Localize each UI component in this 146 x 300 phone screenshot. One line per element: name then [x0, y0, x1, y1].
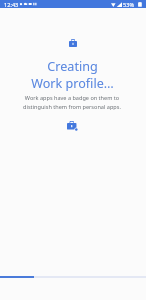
staticText: Work profile…: [31, 75, 114, 92]
other: Work badge example: [67, 121, 78, 131]
staticText: 12:43: [4, 1, 19, 9]
other: Work profile: [69, 39, 77, 47]
staticText: Creating: [47, 58, 98, 75]
staticText: Work apps have a badge on them to distin…: [0, 94, 145, 110]
staticText: 53%: [123, 1, 135, 9]
